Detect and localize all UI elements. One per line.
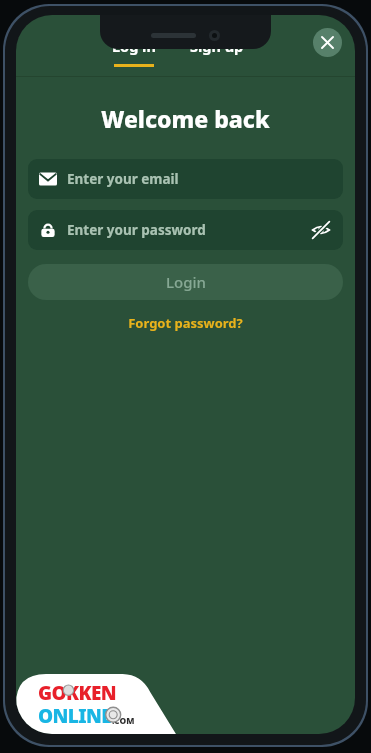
button[interactable]: Login [28, 264, 343, 300]
button[interactable]: Forgot password? [16, 311, 355, 335]
staticText: Sign up [190, 36, 244, 56]
button[interactable]: Show password [310, 219, 332, 241]
staticText: Welcome back [16, 103, 355, 134]
staticText: Enter your email [67, 170, 179, 188]
button[interactable]: Close [313, 28, 342, 57]
button[interactable]: Enter your password [28, 210, 343, 250]
staticText: ONLINE [38, 703, 112, 729]
staticText: Log in [112, 36, 156, 56]
button[interactable]: Sign up [186, 36, 248, 67]
button[interactable]: Log in [108, 36, 160, 67]
staticText: GOKKEN [38, 680, 116, 706]
staticText: Login [166, 272, 206, 292]
staticText: Enter your password [67, 221, 206, 239]
button[interactable]: Enter your email [28, 159, 343, 199]
staticText: .COM [112, 715, 135, 727]
